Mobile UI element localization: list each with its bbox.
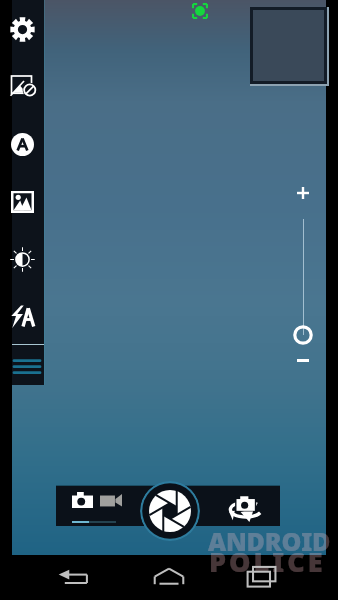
button[interactable]: Back <box>58 565 92 589</box>
button[interactable]: Flash auto <box>10 304 35 329</box>
button[interactable]: Zoom level <box>293 325 313 345</box>
button[interactable]: Zoom in <box>297 187 309 199</box>
button[interactable]: Last photo <box>250 7 329 86</box>
button[interactable]: Settings <box>10 17 35 42</box>
button[interactable]: More settings <box>14 354 40 378</box>
button[interactable]: Video mode <box>100 493 122 507</box>
staticText: ANDROID <box>208 524 331 558</box>
button[interactable]: Exposure <box>10 247 35 272</box>
button[interactable]: Scene mode <box>10 190 35 215</box>
button[interactable]: Shutter <box>140 481 200 541</box>
other: Focus <box>192 3 208 19</box>
button[interactable]: Home <box>152 565 186 589</box>
button[interactable]: Auto mode <box>10 132 35 157</box>
button[interactable]: Recent apps <box>246 565 278 589</box>
button[interactable]: Switch camera <box>229 491 263 522</box>
button[interactable]: Photo mode <box>72 492 93 508</box>
button[interactable]: Geotag off <box>10 75 35 100</box>
staticText: POLICE <box>209 543 326 580</box>
